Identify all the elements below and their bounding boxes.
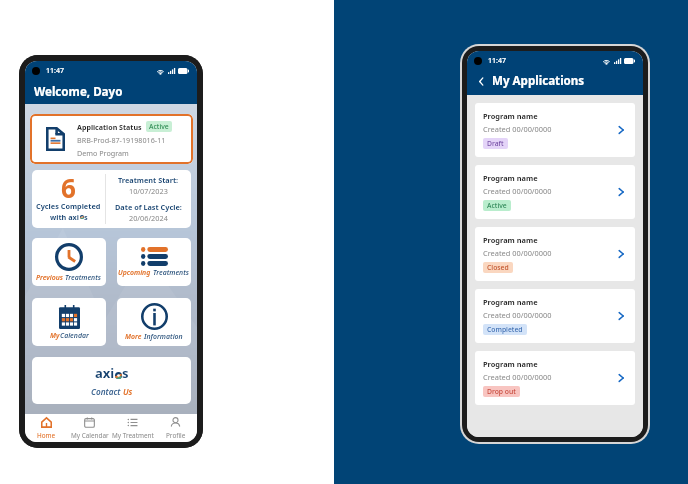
staticText: Created 00/00/0000: [483, 248, 552, 258]
staticText: Application Status: [77, 122, 142, 132]
staticText: My Applications: [492, 73, 585, 89]
staticText: Draft: [487, 139, 504, 148]
staticText: More: [125, 332, 144, 341]
button[interactable]: Application Status: [30, 114, 193, 164]
button[interactable]: My Treatment: [111, 414, 154, 442]
staticText: with axi: [50, 212, 80, 222]
staticText: Us: [123, 386, 133, 397]
staticText: 11:47: [488, 56, 506, 66]
button[interactable]: Profile: [154, 414, 197, 442]
staticText: Information: [144, 332, 183, 341]
button[interactable]: Back: [474, 74, 488, 88]
staticText: Program name: [483, 173, 538, 183]
staticText: Program name: [483, 359, 538, 369]
staticText: Completed: [487, 325, 523, 334]
staticText: Active: [149, 122, 169, 131]
staticText: 6: [61, 170, 76, 205]
staticText: Created 00/00/0000: [483, 372, 552, 382]
button[interactable]: Program name: [475, 351, 635, 405]
staticText: Created 00/00/0000: [483, 310, 552, 320]
staticText: Treatments: [65, 273, 102, 282]
staticText: Upcoming: [118, 268, 153, 277]
staticText: Contact: [91, 386, 123, 397]
staticText: s: [122, 364, 129, 382]
staticText: 20/06/2024: [129, 213, 168, 223]
staticText: My Calendar: [71, 431, 109, 440]
button[interactable]: My Calendar: [68, 414, 111, 442]
staticText: Treatment Start:: [118, 175, 179, 185]
staticText: Home: [37, 431, 56, 440]
staticText: Previous: [36, 273, 65, 282]
staticText: Created 00/00/0000: [483, 124, 552, 134]
button[interactable]: Upcoming: [117, 238, 191, 286]
button[interactable]: Previous: [32, 238, 106, 286]
button[interactable]: My: [32, 298, 106, 346]
staticText: 10/07/2023: [129, 186, 168, 196]
staticText: My: [50, 331, 60, 340]
staticText: Created 00/00/0000: [483, 186, 552, 196]
button[interactable]: axi: [32, 357, 191, 404]
staticText: Program name: [483, 235, 538, 245]
staticText: Program name: [483, 111, 538, 121]
staticText: 11:47: [46, 66, 64, 76]
staticText: Calendar: [60, 331, 89, 340]
staticText: BRB-Prod-87-19198016-11: [77, 135, 166, 145]
staticText: My Treatment: [112, 431, 154, 440]
button[interactable]: More: [117, 298, 191, 346]
staticText: Cycles Completed: [36, 201, 101, 211]
staticText: Closed: [487, 263, 509, 272]
staticText: Drop out: [487, 387, 516, 396]
button[interactable]: Program name: [475, 103, 635, 157]
staticText: Welcome, Dayo: [34, 84, 123, 100]
staticText: Date of Last Cycle:: [115, 202, 182, 212]
button[interactable]: Program name: [475, 289, 635, 343]
staticText: Treatments: [153, 268, 190, 277]
staticText: Demo Program: [77, 148, 129, 158]
staticText: Active: [487, 201, 507, 210]
button[interactable]: Home: [25, 414, 68, 442]
staticText: Profile: [166, 431, 186, 440]
button[interactable]: Program name: [475, 227, 635, 281]
staticText: axi: [95, 364, 115, 382]
button[interactable]: Program name: [475, 165, 635, 219]
staticText: Program name: [483, 297, 538, 307]
staticText: s: [84, 212, 88, 222]
